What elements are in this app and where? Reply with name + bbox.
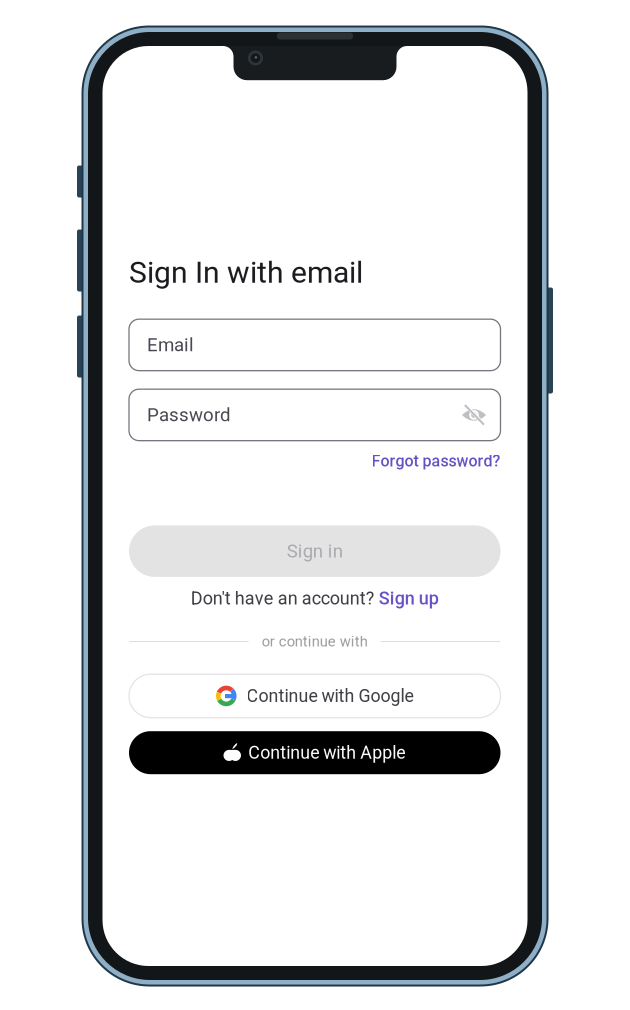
button[interactable]: Sign up xyxy=(379,588,439,609)
button[interactable]: Continue with Google xyxy=(129,674,500,718)
staticText: Sign In with email xyxy=(129,255,363,290)
button[interactable]: Sign in xyxy=(129,525,500,577)
button[interactable]: Forgot password? xyxy=(371,452,500,470)
staticText: Password xyxy=(147,404,231,426)
staticText: Email xyxy=(147,334,194,356)
staticText: Don't have an account? xyxy=(191,588,375,609)
button[interactable]: Continue with Apple xyxy=(129,731,500,774)
staticText: Sign up xyxy=(379,588,439,609)
staticText: Forgot password? xyxy=(371,452,500,470)
staticText: or continue with xyxy=(262,633,368,650)
staticText: Sign in xyxy=(287,540,343,562)
staticText: Continue with Google xyxy=(246,685,413,706)
staticText: Continue with Apple xyxy=(248,742,405,763)
button[interactable]: Show password xyxy=(462,403,485,426)
